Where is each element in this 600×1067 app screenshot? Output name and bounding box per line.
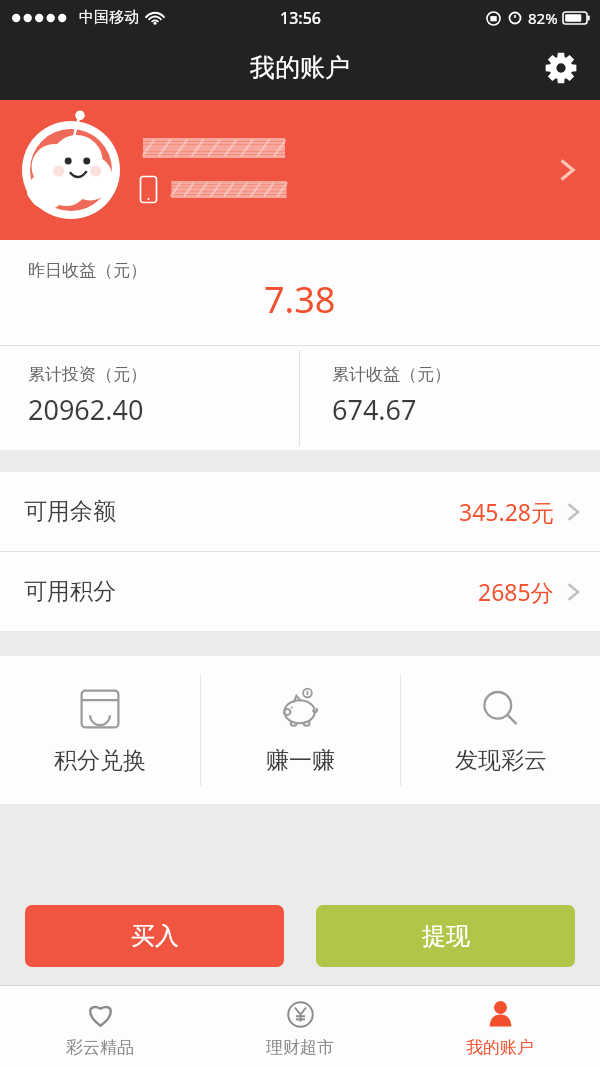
staticText: 提现 xyxy=(422,921,470,951)
button[interactable]: 彩云精品 xyxy=(0,986,200,1067)
staticText: 可用余额 xyxy=(24,497,116,526)
staticText: 20962.40 xyxy=(28,391,144,428)
staticText: 我的账户 xyxy=(250,52,350,83)
button[interactable]: Settings xyxy=(538,45,584,91)
staticText: 累计收益（元） xyxy=(332,364,451,385)
staticText: 82% xyxy=(528,8,558,28)
button[interactable]: 可用余额 xyxy=(0,472,600,551)
button[interactable] xyxy=(0,100,600,240)
staticText: 彩云精品 xyxy=(66,1037,134,1058)
button[interactable]: 发现彩云 xyxy=(401,656,600,804)
staticText: 7.38 xyxy=(264,275,336,324)
button[interactable]: 积分兑换 xyxy=(0,656,200,804)
button[interactable]: 赚一赚 xyxy=(201,656,400,804)
staticText: 2685分 xyxy=(478,576,554,607)
staticText: 累计投资（元） xyxy=(28,364,147,385)
staticText: 我的账户 xyxy=(466,1037,534,1058)
staticText: 理财超市 xyxy=(266,1037,334,1058)
staticText: 中国移动 xyxy=(79,8,139,27)
button[interactable]: 买入 xyxy=(25,905,284,967)
button[interactable]: 我的账户 xyxy=(400,986,600,1067)
staticText: 可用积分 xyxy=(24,577,116,606)
button[interactable]: 提现 xyxy=(316,905,575,967)
staticText: 13:56 xyxy=(280,7,321,29)
staticText: 345.28元 xyxy=(459,496,554,527)
staticText: 积分兑换 xyxy=(54,746,146,775)
staticText: 昨日收益（元） xyxy=(28,260,147,281)
button[interactable]: 理财超市 xyxy=(200,986,400,1067)
staticText: 赚一赚 xyxy=(266,746,335,775)
staticText: 发现彩云 xyxy=(455,746,547,775)
button[interactable]: 可用积分 xyxy=(0,552,600,631)
staticText: 买入 xyxy=(131,921,179,951)
staticText: 674.67 xyxy=(332,391,417,428)
